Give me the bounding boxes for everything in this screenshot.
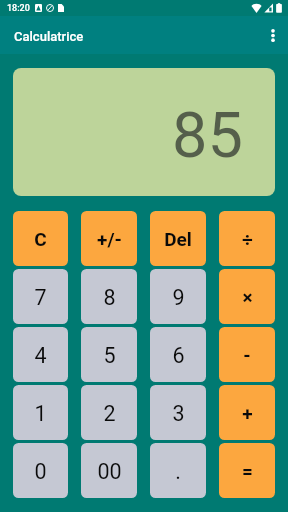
button[interactable]: More options (258, 16, 288, 54)
staticText: 0 (34, 459, 47, 484)
staticText: +/- (97, 228, 122, 250)
button[interactable]: 0 (13, 443, 68, 498)
button[interactable]: 2 (81, 385, 137, 440)
button[interactable]: + (219, 385, 275, 440)
staticText: 2 (103, 401, 116, 426)
staticText: + (242, 402, 253, 424)
staticText: × (242, 286, 253, 308)
staticText: 3 (172, 401, 185, 426)
staticText: 8 (103, 285, 116, 310)
staticText: 00 (97, 459, 122, 484)
button[interactable]: 3 (150, 385, 206, 440)
staticText: 6 (172, 343, 185, 368)
button[interactable]: 6 (150, 327, 206, 382)
staticText: 4 (34, 343, 47, 368)
button[interactable]: × (219, 269, 275, 324)
staticText: C (34, 228, 47, 250)
button[interactable]: 5 (81, 327, 137, 382)
staticText: 1 (34, 401, 47, 426)
button[interactable]: 9 (150, 269, 206, 324)
button[interactable]: 7 (13, 269, 68, 324)
staticText: 85 (172, 99, 243, 173)
button[interactable]: 8 (81, 269, 137, 324)
staticText: = (242, 460, 253, 482)
button[interactable]: 1 (13, 385, 68, 440)
staticText: 7 (34, 285, 47, 310)
button[interactable]: C (13, 211, 68, 266)
staticText: . (175, 459, 181, 484)
staticText: Calculatrice (14, 29, 84, 44)
button[interactable]: ÷ (219, 211, 275, 266)
button[interactable]: 00 (81, 443, 137, 498)
button[interactable]: . (150, 443, 206, 498)
button[interactable]: - (219, 327, 275, 382)
staticText: 9 (172, 285, 185, 310)
button[interactable]: 4 (13, 327, 68, 382)
staticText: 18:20 (7, 3, 30, 14)
staticText: Del (164, 228, 192, 250)
button[interactable]: = (219, 443, 275, 498)
staticText: ÷ (242, 228, 253, 250)
button[interactable]: +/- (81, 211, 137, 266)
button[interactable]: Del (150, 211, 206, 266)
staticText: 5 (103, 343, 116, 368)
staticText: - (243, 344, 251, 366)
